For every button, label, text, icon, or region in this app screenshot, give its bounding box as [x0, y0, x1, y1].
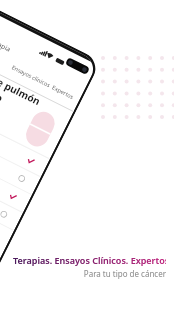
button[interactable] — [0, 92, 50, 176]
staticText: microcítico — [0, 68, 6, 105]
button[interactable] — [0, 163, 14, 248]
staticText: Para tu tipo de cáncer — [13, 268, 166, 279]
staticText: Cáncer de pulmón — [0, 55, 43, 109]
button[interactable] — [0, 128, 32, 212]
staticText: Terapias. Ensayos Clínicos. Expertos. — [13, 254, 166, 266]
button[interactable] — [0, 110, 41, 194]
button[interactable] — [0, 145, 23, 230]
staticText: Terapia — [0, 36, 13, 54]
button[interactable]: Ensayos clínicos — [10, 63, 51, 89]
button[interactable]: Expertos — [51, 83, 76, 101]
